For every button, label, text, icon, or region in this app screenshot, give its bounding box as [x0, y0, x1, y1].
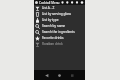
staticText: List A - Z	[42, 6, 55, 10]
staticText: Favorite drinks	[42, 36, 64, 40]
button[interactable]: List by type	[34, 17, 85, 23]
staticText: Random drink	[42, 42, 63, 46]
button[interactable]: Search by name	[34, 23, 85, 29]
staticText: List by type	[42, 18, 59, 22]
staticText: List by serving glass	[42, 12, 71, 16]
button[interactable]: Random drink	[34, 41, 85, 47]
button[interactable]: Menu	[35, 1, 38, 4]
button[interactable]: Search the ingredients	[34, 29, 85, 35]
staticText: Cocktail Menu	[39, 1, 60, 5]
button[interactable]: List A - Z	[34, 5, 85, 11]
staticText: Search the ingredients	[42, 30, 75, 34]
button[interactable]: Favorite drinks	[34, 35, 85, 41]
button[interactable]: More options	[60, 0, 85, 5]
staticText: Search by name	[42, 24, 66, 28]
button[interactable]: List by serving glass	[34, 11, 85, 17]
